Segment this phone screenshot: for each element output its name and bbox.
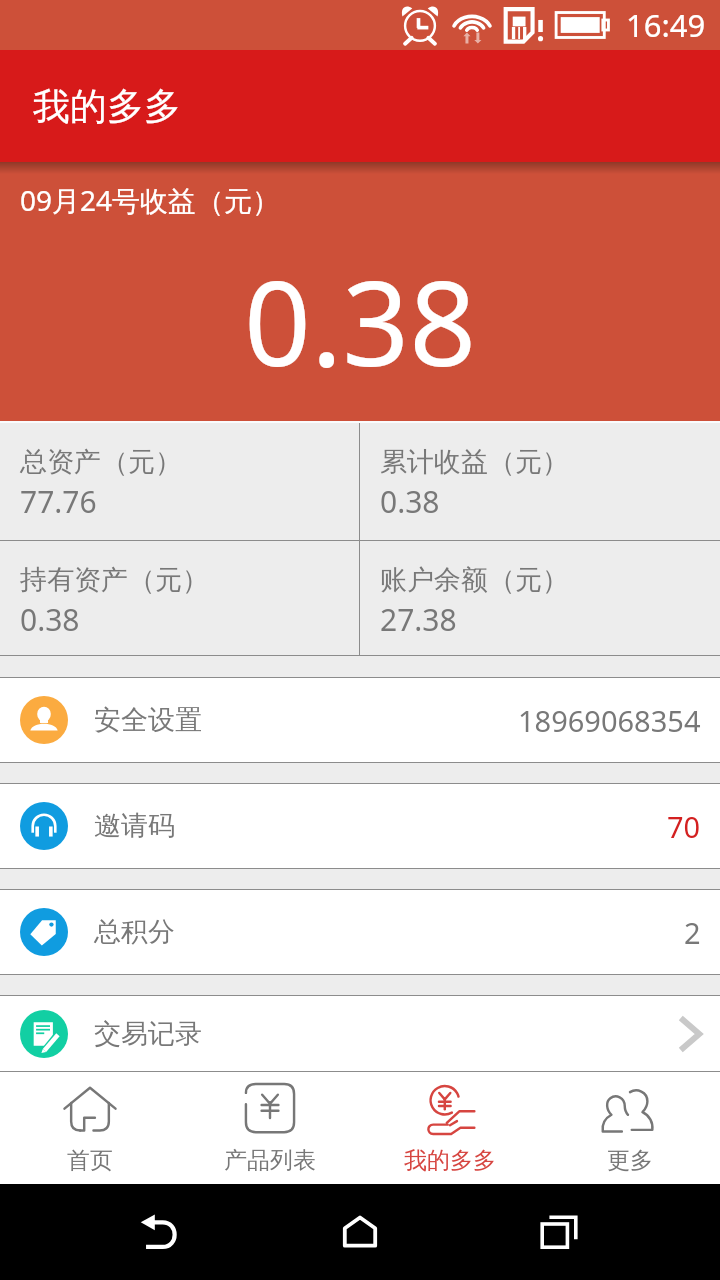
staticText: 安全设置 bbox=[94, 703, 202, 737]
staticText: 09月24号收益（元） bbox=[20, 181, 281, 219]
staticText: 77.76 bbox=[20, 481, 97, 522]
button[interactable]: 首页 bbox=[0, 1072, 180, 1184]
button[interactable]: 邀请码 bbox=[0, 784, 720, 868]
staticText: 0.38 bbox=[380, 481, 440, 522]
staticText: 产品列表 bbox=[224, 1146, 316, 1175]
staticText: 我的多多 bbox=[33, 83, 181, 130]
staticText: 0.38 bbox=[244, 241, 477, 400]
button[interactable]: 产品列表 bbox=[180, 1072, 360, 1184]
button[interactable]: Recents bbox=[521, 1194, 597, 1270]
staticText: 累计收益（元） bbox=[380, 445, 569, 479]
staticText: 我的多多 bbox=[404, 1146, 496, 1175]
other: Open bbox=[679, 1018, 701, 1050]
staticText: 16:49 bbox=[626, 4, 706, 46]
staticText: 18969068354 bbox=[518, 701, 701, 740]
staticText: 27.38 bbox=[380, 599, 457, 640]
staticText: 首页 bbox=[67, 1146, 113, 1175]
button[interactable]: Back bbox=[123, 1194, 199, 1270]
button[interactable]: 交易记录 bbox=[0, 996, 720, 1071]
staticText: 70 bbox=[667, 807, 701, 846]
button[interactable]: 总积分 bbox=[0, 890, 720, 974]
staticText: 总积分 bbox=[94, 915, 175, 949]
button[interactable]: 更多 bbox=[540, 1072, 720, 1184]
button[interactable]: Home bbox=[322, 1194, 398, 1270]
staticText: 交易记录 bbox=[94, 1017, 202, 1051]
staticText: 0.38 bbox=[20, 599, 80, 640]
staticText: 更多 bbox=[607, 1146, 653, 1175]
staticText: 持有资产（元） bbox=[20, 563, 209, 597]
button[interactable]: 我的多多 bbox=[360, 1072, 540, 1184]
button[interactable]: 安全设置 bbox=[0, 678, 720, 762]
staticText: 账户余额（元） bbox=[380, 563, 569, 597]
staticText: 2 bbox=[684, 913, 701, 952]
staticText: 总资产（元） bbox=[20, 445, 182, 479]
staticText: 邀请码 bbox=[94, 809, 175, 843]
